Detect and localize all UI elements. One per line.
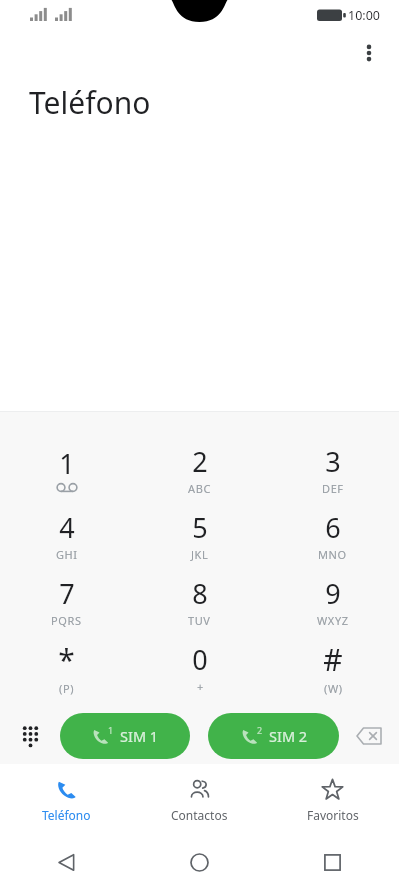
staticText: 1 bbox=[108, 724, 114, 736]
staticText: Teléfono bbox=[29, 82, 151, 123]
button[interactable]: Backspace bbox=[339, 708, 399, 764]
staticText: 3 bbox=[325, 443, 341, 480]
staticText: MNO bbox=[318, 547, 347, 562]
staticText: 6 bbox=[325, 509, 341, 546]
staticText: Favoritos bbox=[307, 807, 359, 823]
staticText: PQRS bbox=[51, 613, 82, 628]
button[interactable]: * bbox=[0, 634, 133, 700]
button[interactable]: 7 bbox=[0, 568, 133, 634]
button[interactable]: Hide dialpad bbox=[0, 708, 60, 764]
staticText: 10:00 bbox=[348, 7, 380, 24]
staticText: + bbox=[197, 679, 204, 694]
staticText: # bbox=[323, 639, 343, 680]
staticText: (P) bbox=[59, 681, 75, 696]
staticText: GHI bbox=[56, 547, 78, 562]
staticText: 9 bbox=[325, 575, 341, 612]
staticText: 8 bbox=[192, 575, 208, 612]
button[interactable]: Teléfono bbox=[0, 764, 133, 836]
button[interactable]: 0 bbox=[133, 634, 266, 700]
staticText: (W) bbox=[324, 681, 343, 696]
button[interactable]: Favoritos bbox=[266, 764, 399, 836]
button[interactable]: 6 bbox=[266, 502, 399, 568]
staticText: 5 bbox=[192, 509, 208, 546]
button[interactable]: 5 bbox=[133, 502, 266, 568]
staticText: WXYZ bbox=[317, 613, 349, 628]
staticText: * bbox=[58, 639, 75, 680]
button[interactable]: Back bbox=[0, 836, 133, 888]
staticText: ABC bbox=[188, 481, 211, 496]
staticText: DEF bbox=[322, 481, 344, 496]
button[interactable]: Home bbox=[133, 836, 266, 888]
button[interactable]: 1 bbox=[60, 713, 190, 759]
staticText: Contactos bbox=[171, 807, 228, 823]
staticText: TUV bbox=[188, 613, 211, 628]
staticText: 1 bbox=[59, 445, 75, 482]
staticText: 7 bbox=[59, 575, 75, 612]
staticText: JKL bbox=[191, 547, 209, 562]
button[interactable]: 2 bbox=[133, 436, 266, 502]
staticText: Teléfono bbox=[42, 807, 91, 823]
staticText: SIM 1 bbox=[120, 726, 159, 746]
staticText: 4 bbox=[59, 509, 75, 546]
button[interactable]: 4 bbox=[0, 502, 133, 568]
button[interactable]: Recents bbox=[266, 836, 399, 888]
staticText: 2 bbox=[192, 443, 208, 480]
staticText: 2 bbox=[257, 724, 263, 736]
button[interactable]: Contactos bbox=[133, 764, 266, 836]
staticText: SIM 2 bbox=[269, 726, 308, 746]
button[interactable]: 8 bbox=[133, 568, 266, 634]
button[interactable]: 9 bbox=[266, 568, 399, 634]
button[interactable]: # bbox=[266, 634, 399, 700]
button[interactable]: More options bbox=[347, 31, 391, 75]
button[interactable]: 3 bbox=[266, 436, 399, 502]
staticText: 0 bbox=[192, 641, 208, 678]
button[interactable]: 2 bbox=[208, 713, 339, 759]
button[interactable]: 1 bbox=[0, 436, 133, 502]
